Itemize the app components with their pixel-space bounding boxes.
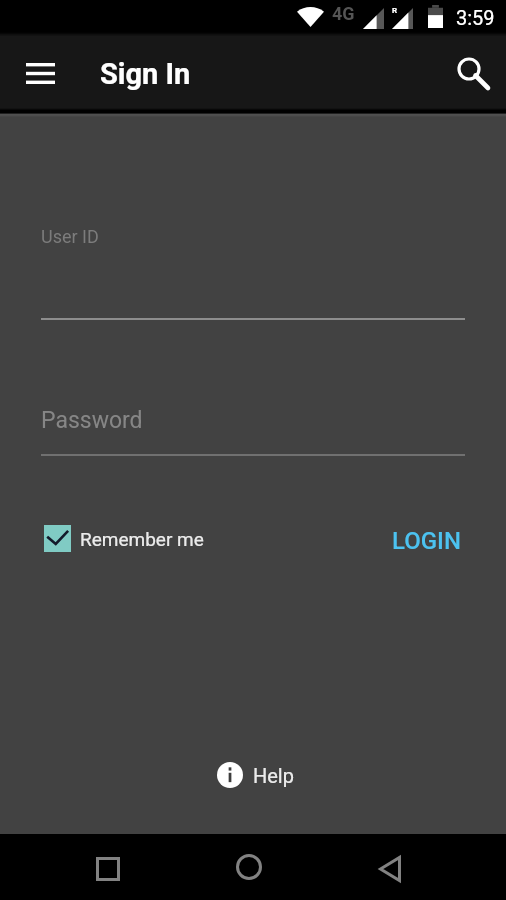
button[interactable]: Password (41, 400, 465, 456)
staticText: Password (41, 407, 143, 434)
button[interactable]: Remember me (36, 518, 212, 559)
staticText: Help (253, 764, 294, 787)
staticText: 4G (332, 3, 355, 24)
button[interactable]: Open navigation menu (16, 49, 64, 97)
button[interactable]: User ID (41, 220, 465, 320)
staticText: LOGIN (392, 527, 461, 555)
staticText: 3:59 (456, 6, 495, 29)
button[interactable]: LOGIN (378, 519, 474, 563)
staticText: Remember me (80, 528, 204, 550)
staticText: R (392, 6, 398, 15)
staticText: Sign In (100, 57, 191, 91)
staticText: User ID (41, 226, 99, 247)
button[interactable]: Home (225, 843, 273, 891)
button[interactable]: Recent apps (84, 845, 132, 893)
button[interactable]: Search (450, 49, 498, 97)
button[interactable]: Help (211, 757, 300, 793)
button[interactable]: Back (366, 845, 414, 893)
